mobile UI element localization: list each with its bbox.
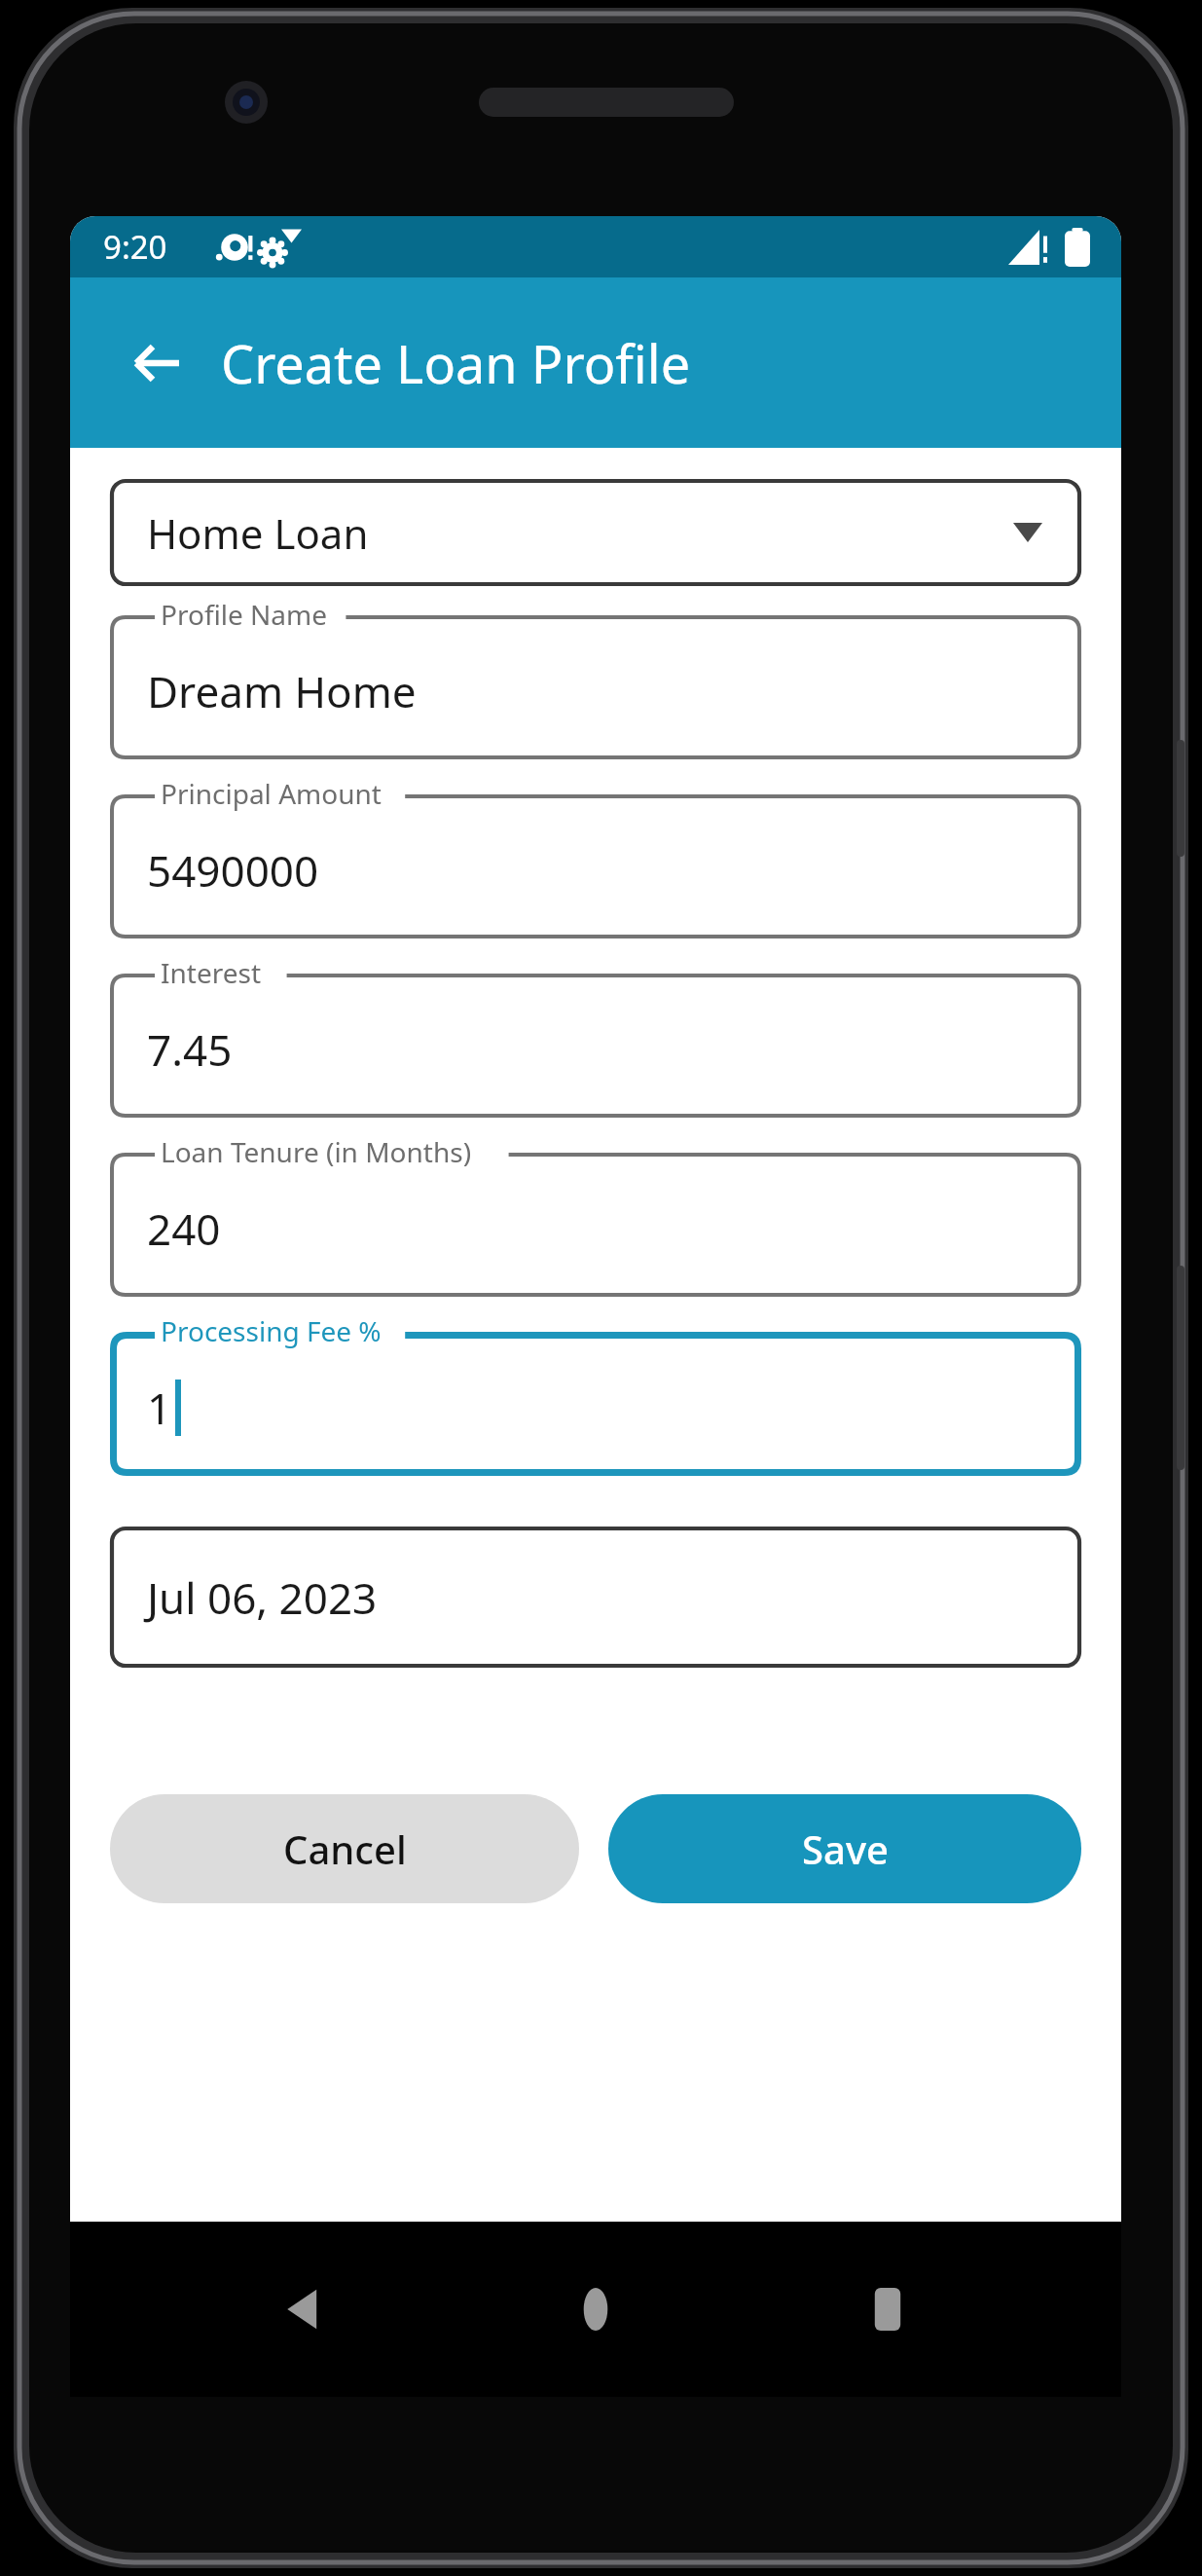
staticText: Interest bbox=[161, 954, 262, 991]
button[interactable]: Home bbox=[547, 2261, 644, 2358]
button[interactable]: Home Loan bbox=[110, 479, 1081, 586]
button[interactable]: Back bbox=[121, 326, 195, 400]
staticText: Jul 06, 2023 bbox=[147, 1568, 378, 1627]
button[interactable]: Interest bbox=[110, 974, 1081, 1118]
button[interactable]: Save bbox=[608, 1794, 1081, 1903]
button[interactable]: Recent apps bbox=[839, 2261, 936, 2358]
staticText: Loan Tenure (in Months) bbox=[161, 1133, 472, 1170]
staticText: Create Loan Profile bbox=[221, 327, 691, 399]
staticText: Dream Home bbox=[147, 662, 417, 720]
staticText: Home Loan bbox=[147, 505, 369, 561]
button[interactable]: Back bbox=[255, 2261, 352, 2358]
staticText: 7.45 bbox=[147, 1020, 233, 1079]
staticText: Save bbox=[802, 1822, 889, 1875]
staticText: Cancel bbox=[283, 1822, 407, 1875]
button[interactable]: Pick date bbox=[110, 1527, 1081, 1668]
staticText: 9:20 bbox=[103, 225, 167, 269]
staticText: 240 bbox=[147, 1199, 221, 1258]
staticText: 5490000 bbox=[147, 841, 319, 900]
button[interactable]: Cancel bbox=[110, 1794, 579, 1903]
staticText: Profile Name bbox=[161, 596, 327, 633]
staticText: Principal Amount bbox=[161, 775, 382, 812]
button[interactable]: Processing Fee % bbox=[110, 1332, 1081, 1476]
button[interactable]: Principal Amount bbox=[110, 794, 1081, 938]
button[interactable]: Profile Name bbox=[110, 615, 1081, 759]
staticText: Processing Fee % bbox=[161, 1312, 382, 1349]
button[interactable]: Loan Tenure (in Months) bbox=[110, 1153, 1081, 1297]
staticText: 1 bbox=[147, 1379, 172, 1437]
